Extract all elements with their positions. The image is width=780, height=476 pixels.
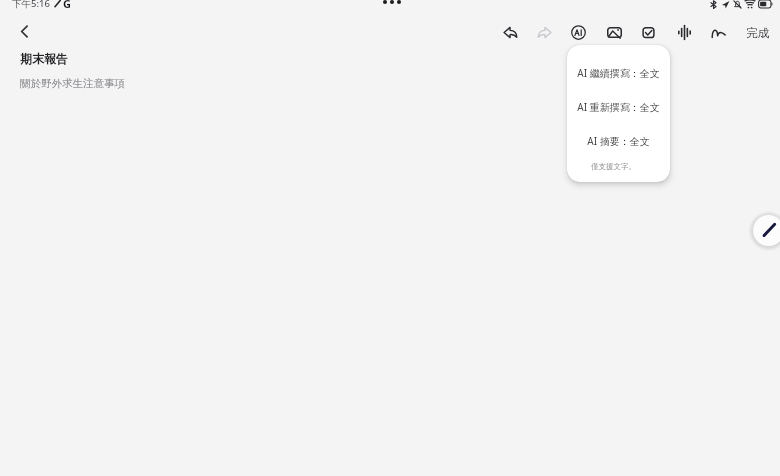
button[interactable]: 完成	[737, 19, 777, 47]
button[interactable]: AI 重新撰寫：全文	[567, 93, 670, 121]
staticText: 期末報告	[20, 51, 68, 66]
staticText: G	[63, 0, 71, 11]
button[interactable]: AI 繼續撰寫：全文	[567, 59, 670, 87]
button[interactable]: AI assist	[563, 17, 593, 47]
button[interactable]: Checklist	[633, 17, 663, 47]
button[interactable]: Record audio	[669, 17, 699, 47]
staticText: AI 摘要：全文	[587, 134, 650, 148]
staticText: 關於野外求生注意事項	[20, 77, 125, 90]
button[interactable]: Redo	[529, 17, 559, 47]
button[interactable]: Edit note	[751, 213, 780, 248]
staticText: AI 重新撰寫：全文	[577, 100, 660, 114]
button[interactable]: Back	[12, 19, 37, 44]
button[interactable]: Undo	[495, 17, 525, 47]
staticText: 完成	[746, 26, 769, 40]
staticText: 僅支援文字。	[591, 162, 636, 171]
staticText: 下午5:16	[12, 0, 50, 10]
button[interactable]: AI 摘要：全文	[567, 127, 670, 155]
staticText: AI 繼續撰寫：全文	[577, 66, 660, 80]
button[interactable]: Insert image	[599, 17, 629, 47]
button[interactable]: Draw	[703, 17, 733, 47]
